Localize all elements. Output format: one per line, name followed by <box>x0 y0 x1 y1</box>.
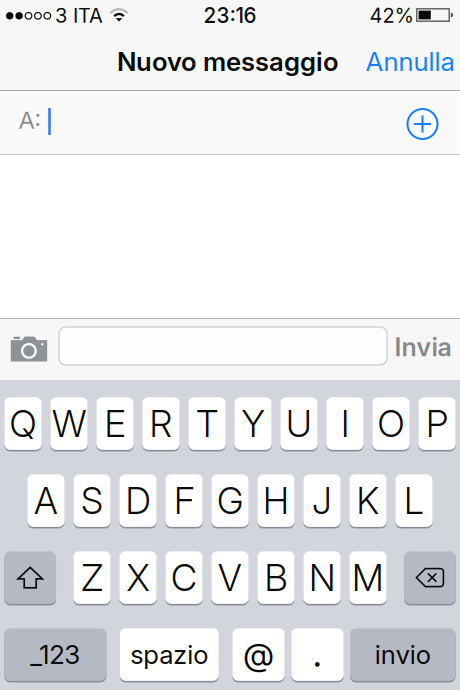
staticText: Nuovo messaggio <box>117 46 339 77</box>
staticText: H <box>263 478 289 523</box>
staticText: U <box>286 401 312 446</box>
staticText: I <box>341 401 349 446</box>
button[interactable]: D <box>119 473 157 528</box>
staticText: N <box>309 555 335 600</box>
button[interactable]: U <box>280 396 318 451</box>
button[interactable]: invio <box>350 627 456 682</box>
button[interactable]: M <box>349 550 387 605</box>
staticText: W <box>52 401 86 446</box>
button[interactable]: N <box>303 550 341 605</box>
button[interactable]: Attach Photo <box>6 329 52 367</box>
staticText: @ <box>243 635 274 674</box>
staticText: Annulla <box>365 46 454 77</box>
staticText: 42% <box>369 3 413 28</box>
staticText: spazio <box>130 639 208 670</box>
staticText: R <box>149 401 172 446</box>
staticText: V <box>218 555 242 600</box>
button[interactable]: . <box>291 627 344 682</box>
staticText: A <box>34 478 58 523</box>
button[interactable]: K <box>349 473 387 528</box>
button[interactable]: O <box>372 396 410 451</box>
button[interactable]: Q <box>4 396 42 451</box>
staticText: P <box>426 401 448 446</box>
staticText: Invia <box>394 332 451 362</box>
staticText: D <box>125 478 150 523</box>
staticText: K <box>356 478 379 523</box>
button[interactable]: spazio <box>120 627 219 682</box>
staticText: invio <box>375 639 431 670</box>
staticText: A: <box>18 105 41 134</box>
button[interactable]: F <box>165 473 203 528</box>
button[interactable]: W <box>50 396 88 451</box>
staticText: M <box>352 555 384 600</box>
staticText: G <box>217 478 243 523</box>
staticText: C <box>171 555 197 600</box>
button[interactable]: V <box>211 550 249 605</box>
button[interactable]: Add Contact <box>400 102 444 146</box>
button[interactable]: Delete <box>404 550 456 605</box>
staticText: O <box>377 401 404 446</box>
button[interactable]: G <box>211 473 249 528</box>
button[interactable]: L <box>395 473 433 528</box>
staticText: Y <box>241 401 264 446</box>
button[interactable]: Y <box>234 396 272 451</box>
button[interactable]: _123 <box>4 627 106 682</box>
button[interactable]: J <box>303 473 341 528</box>
staticText: _123 <box>30 639 80 670</box>
button[interactable]: Annulla <box>360 39 460 83</box>
button[interactable]: X <box>119 550 157 605</box>
button[interactable]: H <box>257 473 295 528</box>
button[interactable]: S <box>73 473 111 528</box>
button[interactable]: T <box>188 396 226 451</box>
button[interactable]: @ <box>232 627 285 682</box>
staticText: E <box>104 401 125 446</box>
staticText: B <box>264 555 287 600</box>
staticText: X <box>126 555 149 600</box>
staticText: Z <box>81 555 103 600</box>
button[interactable]: E <box>96 396 134 451</box>
staticText: . <box>313 634 322 675</box>
button[interactable]: C <box>165 550 203 605</box>
button[interactable]: B <box>257 550 295 605</box>
staticText: 3 ITA <box>55 3 103 28</box>
button[interactable]: R <box>142 396 180 451</box>
staticText: L <box>404 478 424 523</box>
staticText: Q <box>9 401 36 446</box>
staticText: S <box>81 478 103 523</box>
staticText: F <box>174 478 194 523</box>
staticText: J <box>312 478 332 523</box>
button[interactable]: A <box>27 473 65 528</box>
button[interactable]: P <box>418 396 456 451</box>
button[interactable]: Invia <box>390 325 456 369</box>
button[interactable]: I <box>326 396 364 451</box>
staticText: T <box>196 401 218 446</box>
staticText: 23:16 <box>203 3 256 28</box>
button[interactable]: Shift <box>4 550 56 605</box>
button[interactable]: Z <box>73 550 111 605</box>
